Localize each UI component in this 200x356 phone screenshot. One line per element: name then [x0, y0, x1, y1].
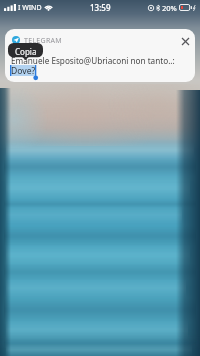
staticText: 13:59	[90, 2, 111, 13]
button[interactable]: Close notification	[178, 34, 192, 48]
staticText: I WIND	[18, 3, 42, 13]
staticText: TELEGRAM	[24, 36, 63, 46]
staticText: Dove?	[11, 65, 36, 77]
button[interactable]: TELEGRAM	[5, 29, 195, 82]
staticText: Copia	[15, 46, 37, 57]
staticText: 20%	[162, 3, 177, 13]
button[interactable]: Copia	[8, 43, 43, 60]
staticText: Emanuele Esposito@Ubriaconi non tanto..:	[11, 55, 185, 66]
